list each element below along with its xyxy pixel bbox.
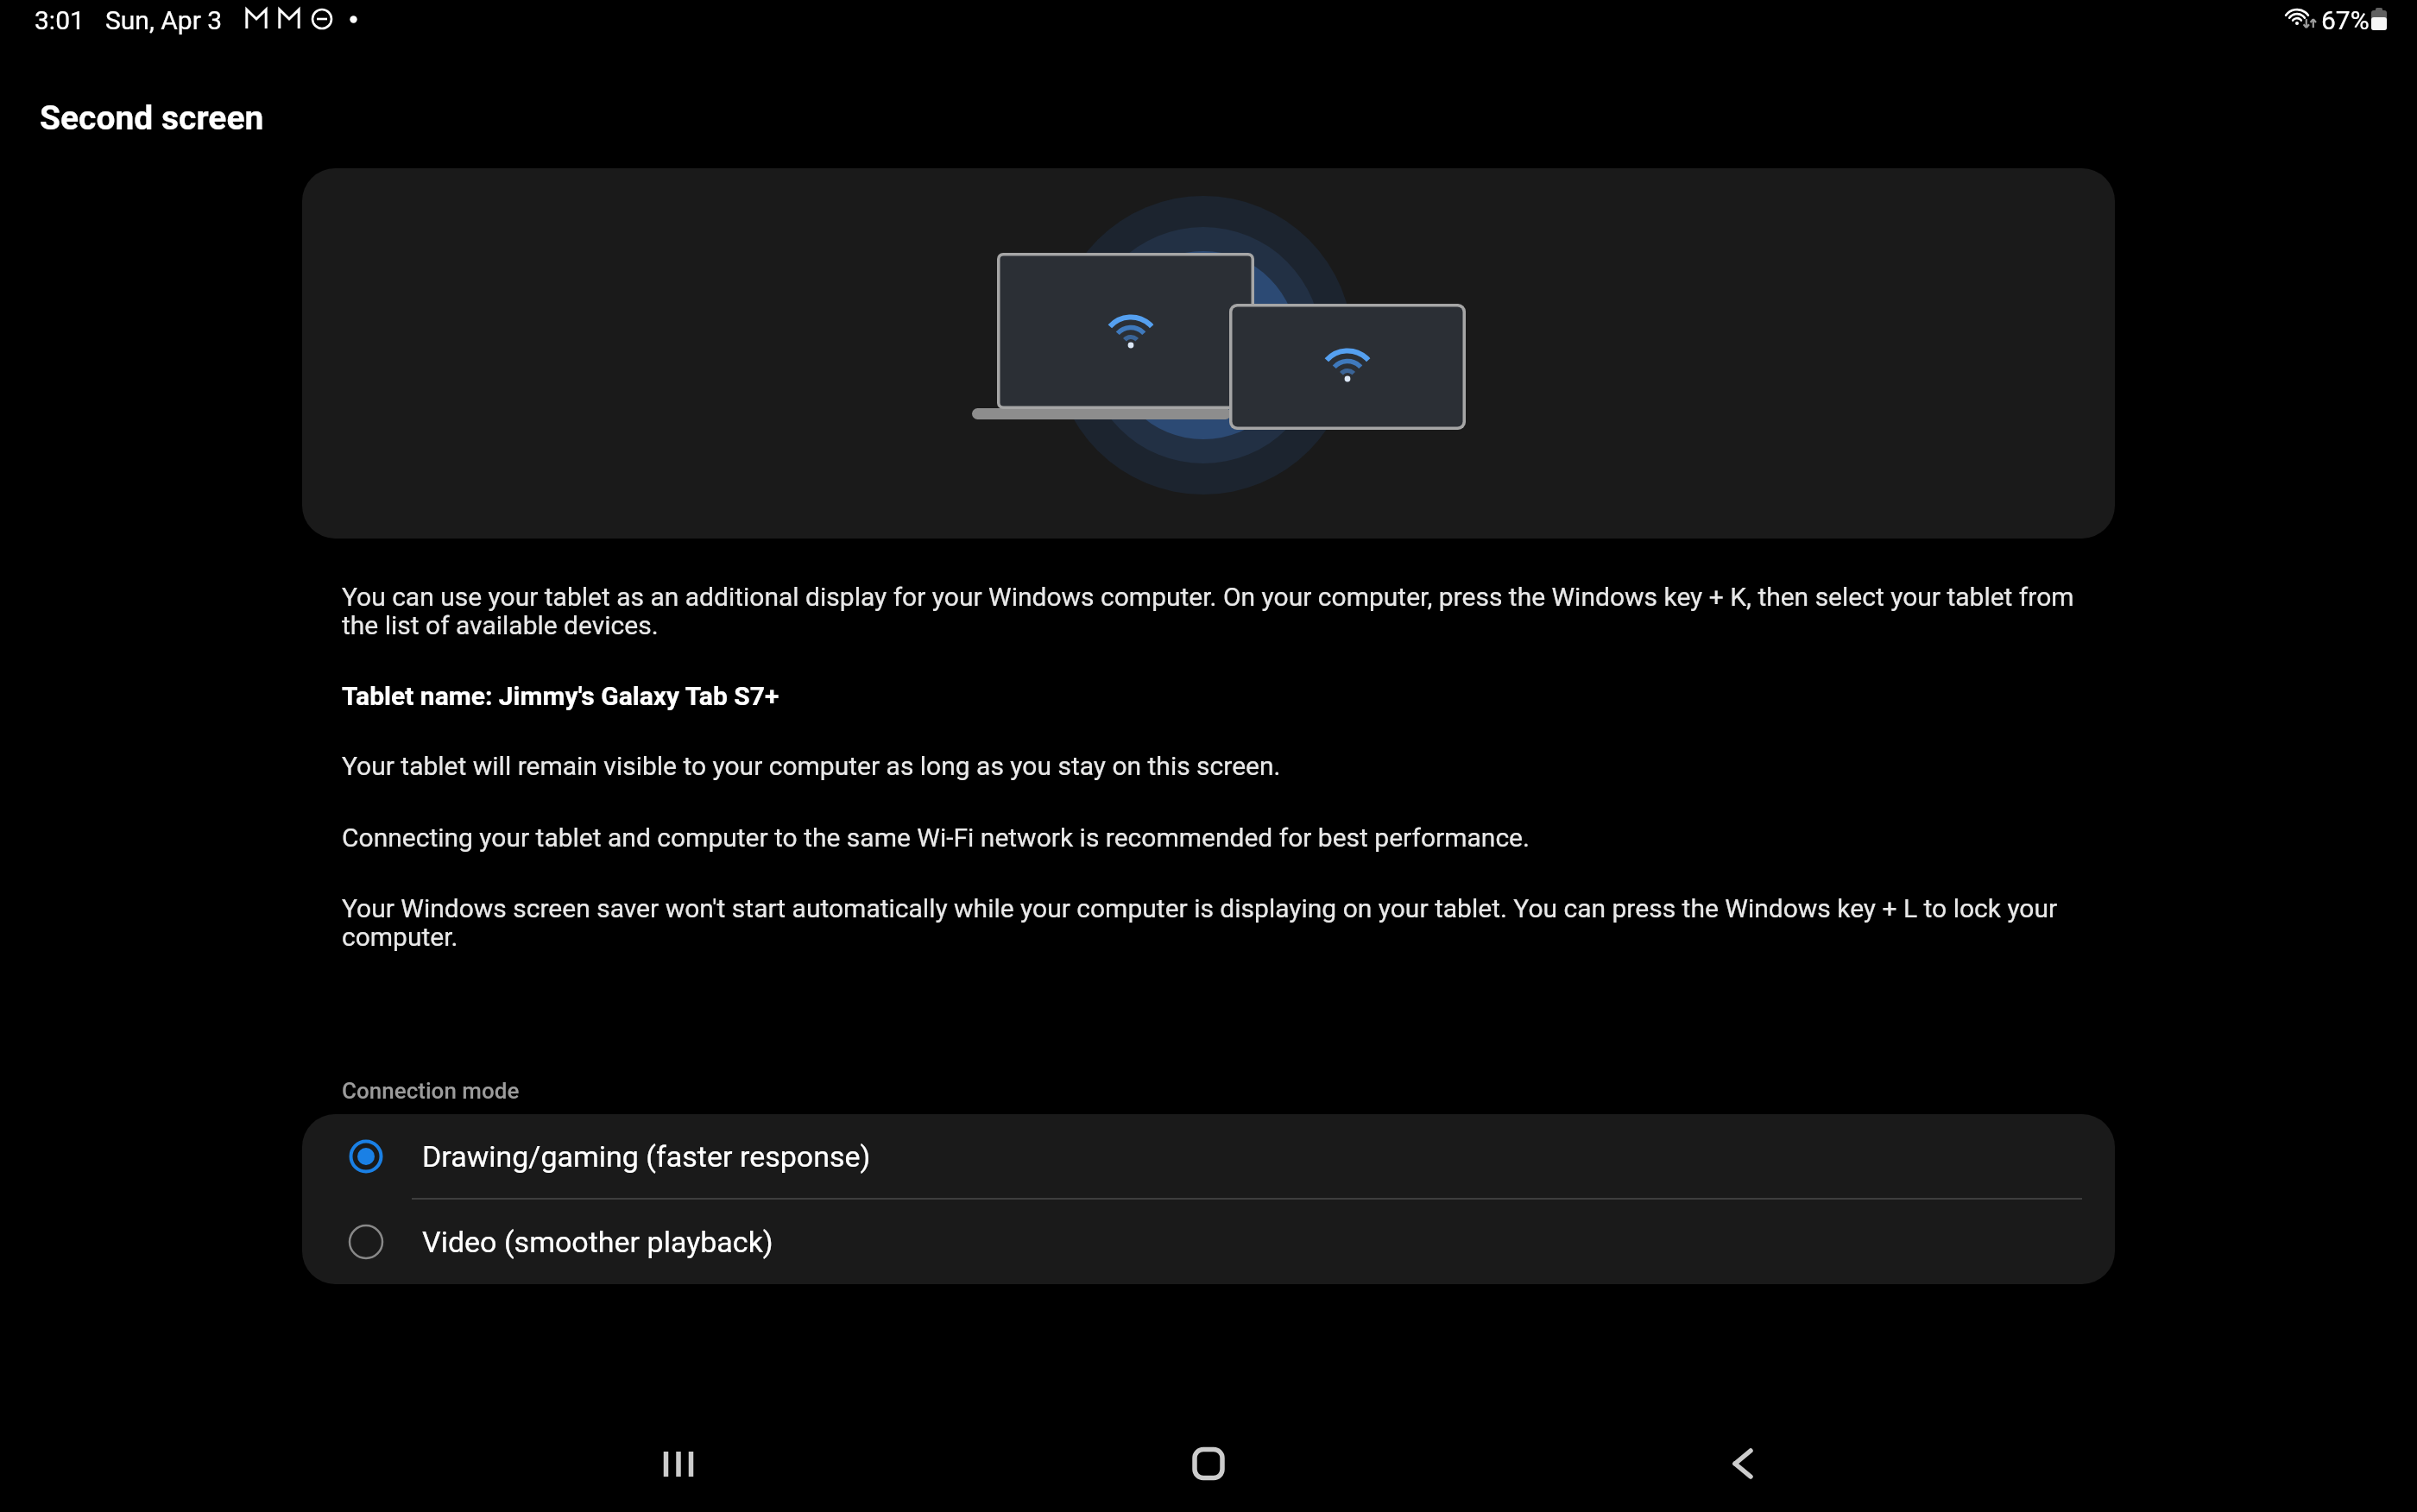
staticText: Drawing/gaming (faster response): [422, 1139, 871, 1174]
staticText: You can use your tablet as an additional…: [342, 582, 2074, 612]
staticText: Sun, Apr 3: [105, 5, 223, 35]
button[interactable]: Video (smoother playback): [302, 1200, 2115, 1283]
staticText: 67%: [2321, 5, 2370, 35]
staticText: Connection mode: [342, 1078, 520, 1104]
staticText: Tablet name: Jimmy's Galaxy Tab S7+: [342, 681, 779, 711]
button[interactable]: Recent apps: [634, 1433, 723, 1494]
button[interactable]: Home: [1164, 1433, 1253, 1494]
staticText: Your Windows screen saver won't start au…: [342, 893, 2058, 923]
staticText: the list of available devices.: [342, 610, 659, 640]
staticText: computer.: [342, 922, 458, 952]
staticText: Second screen: [40, 98, 264, 138]
staticText: Connecting your tablet and computer to t…: [342, 822, 1530, 853]
staticText: Your tablet will remain visible to your …: [342, 751, 1281, 781]
staticText: 3:01: [35, 5, 85, 35]
staticText: Video (smoother playback): [422, 1225, 773, 1259]
button[interactable]: Drawing/gaming (faster response): [302, 1114, 2115, 1198]
button[interactable]: Back: [1695, 1433, 1783, 1494]
